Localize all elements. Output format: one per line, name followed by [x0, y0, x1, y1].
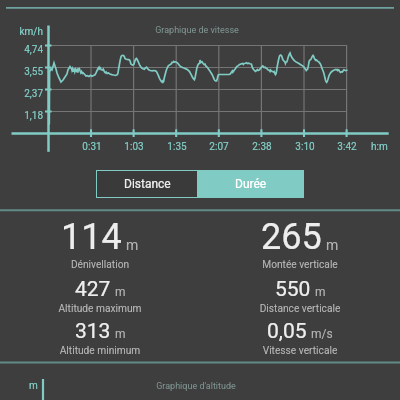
staticText: 427: [75, 277, 111, 302]
staticText: m: [115, 285, 126, 299]
staticText: m: [326, 237, 339, 253]
staticText: 1:03: [104, 141, 164, 153]
staticText: 0,05: [267, 319, 307, 344]
staticText: 265: [261, 216, 322, 258]
button[interactable]: Distance: [96, 170, 198, 198]
staticText: 0:31: [62, 141, 122, 153]
staticText: Altitude maximum: [0, 303, 220, 315]
staticText: 2:38: [232, 141, 292, 153]
staticText: m: [115, 327, 126, 341]
staticText: Durée: [235, 177, 267, 191]
staticText: 3:10: [275, 141, 335, 153]
button[interactable]: 427: [0, 277, 210, 302]
staticText: Graphique de vitesse: [77, 25, 317, 36]
staticText: m: [315, 285, 326, 299]
staticText: 550: [275, 277, 311, 302]
staticText: Dénivellation: [0, 259, 220, 271]
staticText: Distance verticale: [180, 303, 400, 315]
staticText: Montée verticale: [180, 259, 400, 271]
button[interactable]: 114: [0, 216, 210, 258]
staticText: 313: [75, 319, 111, 344]
staticText: 3,55: [0, 66, 43, 78]
button[interactable]: 550: [190, 277, 400, 302]
staticText: 3:42: [317, 141, 377, 153]
staticText: 114: [61, 216, 122, 258]
staticText: h:m: [371, 141, 388, 153]
button[interactable]: 313: [0, 319, 210, 344]
staticText: Altitude minimum: [0, 345, 220, 357]
staticText: m: [29, 380, 38, 392]
staticText: m: [126, 237, 139, 253]
staticText: Vitesse verticale: [180, 345, 400, 357]
staticText: km/h: [0, 26, 43, 38]
staticText: 1,18: [0, 110, 43, 122]
button[interactable]: Durée: [198, 170, 304, 198]
button[interactable]: 265: [190, 216, 400, 258]
staticText: Distance: [124, 177, 171, 191]
staticText: 2:07: [189, 141, 249, 153]
staticText: 4,74: [0, 44, 43, 56]
staticText: 1:35: [147, 141, 207, 153]
button[interactable]: 0,05: [190, 319, 400, 344]
staticText: 2,37: [0, 88, 43, 100]
staticText: m/s: [311, 327, 333, 341]
staticText: Graphique d'altitude: [76, 381, 316, 392]
